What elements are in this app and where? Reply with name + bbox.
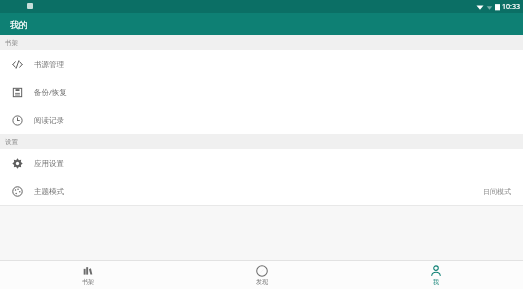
staticText: 书架 [5,39,18,47]
button[interactable]: Discover [175,261,349,289]
staticText: 书源管理 [34,60,64,69]
button[interactable]: Backup and restore [0,78,523,106]
staticText: 主题模式 [34,187,64,196]
staticText: 发现 [256,278,268,286]
button[interactable]: Book sources [0,50,523,78]
other: Reading history [12,115,23,126]
other: Book sources [12,59,23,70]
other: Backup and restore [12,87,23,98]
staticText: 书架 [82,278,94,286]
staticText: 10:33 [502,2,520,12]
staticText: 备份/恢复 [34,87,67,97]
other: Profile [430,265,442,277]
button[interactable]: Reading history [0,106,523,134]
staticText: 阅读记录 [34,116,64,125]
staticText: 应用设置 [34,159,64,168]
other: Theme mode [12,186,23,197]
other: Discover [256,265,268,277]
button[interactable]: Profile [349,261,523,289]
button[interactable]: Bookshelf [0,261,175,289]
button[interactable]: App settings [0,149,523,177]
staticText: 设置 [5,138,18,146]
other: App settings [12,158,23,169]
staticText: 我的 [10,19,28,30]
staticText: 日间模式 [483,187,511,196]
other: Bookshelf [82,265,94,277]
staticText: 我 [433,278,439,286]
button[interactable]: Theme mode [0,177,523,205]
